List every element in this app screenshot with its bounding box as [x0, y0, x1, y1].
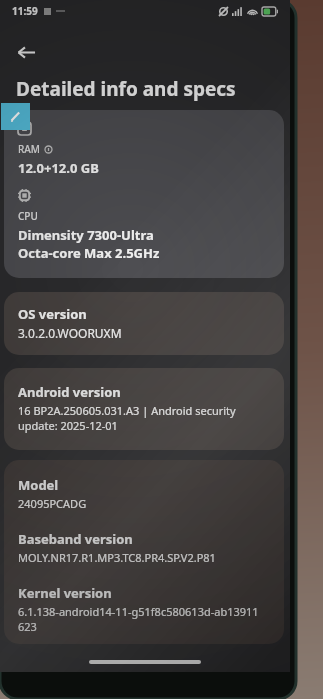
- staticText: MOLY.NR17.R1.MP3.TC8.PR4.SP.V2.P81: [18, 550, 216, 565]
- staticText: CPU: [18, 209, 38, 223]
- staticText: 24095PCADG: [18, 496, 87, 511]
- staticText: RAM: [18, 142, 41, 156]
- staticText: Baseband version: [18, 530, 133, 548]
- button[interactable]: Model: [4, 460, 284, 644]
- staticText: 623: [18, 619, 37, 634]
- button[interactable]: Edit: [1, 103, 30, 130]
- staticText: 3.0.2.0.WOORUXM: [18, 325, 122, 341]
- staticText: 11:59: [12, 4, 38, 18]
- staticText: 16 BP2A.250605.031.A3 | Android security: [18, 403, 236, 418]
- button[interactable]: Back: [8, 34, 44, 70]
- staticText: Octa-core Max 2.5GHz: [18, 244, 160, 262]
- staticText: 6.1.138-android14-11-g51f8c580613d-ab139…: [18, 604, 259, 619]
- staticText: 12.0+12.0 GB: [18, 159, 99, 177]
- staticText: Model: [18, 476, 59, 494]
- staticText: update: 2025-12-01: [18, 418, 118, 433]
- staticText: Detailed info and specs: [16, 76, 236, 102]
- staticText: OS version: [18, 305, 87, 323]
- button[interactable]: Android version: [4, 368, 284, 450]
- staticText: Kernel version: [18, 584, 112, 602]
- staticText: Android version: [18, 383, 121, 401]
- button[interactable]: RAM: [4, 110, 284, 278]
- staticText: Dimensity 7300-Ultra: [18, 226, 154, 244]
- button[interactable]: OS version: [4, 292, 284, 355]
